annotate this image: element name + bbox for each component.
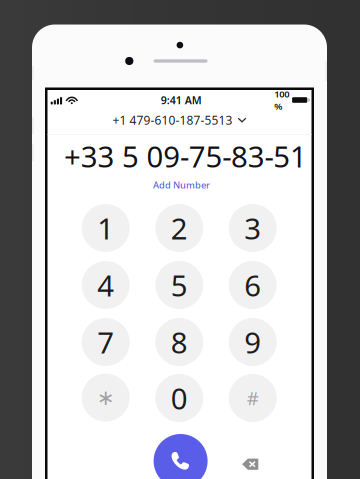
button[interactable]: 8 [155,318,203,366]
button[interactable]: 7 [82,318,130,366]
button[interactable]: 5 [155,261,203,309]
button[interactable]: 9 [229,318,277,366]
button[interactable]: Call [154,434,208,479]
staticText: Add Number [153,179,210,191]
button[interactable]: +1 479-610-187-5513 [47,109,311,131]
staticText: 100% [274,88,289,112]
staticText: 9 [244,322,261,361]
button[interactable]: 6 [229,261,277,309]
staticText: 5 [171,265,188,304]
staticText: 8 [171,322,188,361]
button[interactable]: 4 [82,261,130,309]
button[interactable]: ∗ [82,374,130,422]
staticText: 1 [97,208,114,247]
staticText: +1 479-610-187-5513 [112,112,232,128]
button[interactable]: 1 [82,204,130,252]
staticText: 3 [244,208,261,247]
staticText: +33 5 09-75-83-51 [64,136,307,175]
staticText: 6 [244,265,261,304]
button[interactable]: 0 [155,374,203,422]
button[interactable]: 2 [155,204,203,252]
staticText: 7 [97,322,114,361]
staticText: # [247,386,259,410]
staticText: 4 [97,265,114,304]
button[interactable]: 3 [229,204,277,252]
button[interactable]: Add Number [49,179,313,191]
button[interactable]: Delete [228,442,272,479]
button[interactable]: # [229,374,277,422]
staticText: 2 [171,208,188,247]
staticText: 0 [171,378,188,417]
staticText: ∗ [97,385,115,410]
staticText: 9:41 AM [161,93,202,107]
